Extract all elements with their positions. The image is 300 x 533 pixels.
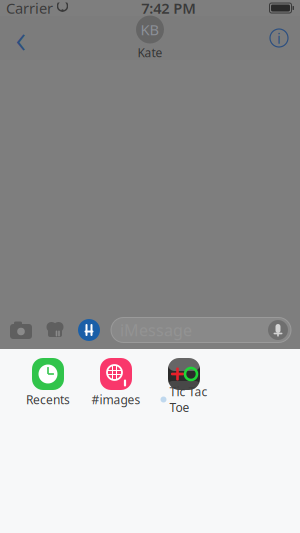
staticText: iMessage [120, 319, 192, 341]
staticText: i [277, 28, 281, 48]
button[interactable]: #images [82, 358, 150, 405]
button[interactable]: Digital Touch [43, 319, 67, 341]
button[interactable]: Back [4, 18, 38, 58]
staticText: ‹ [15, 11, 26, 64]
staticText: Carrier [6, 0, 53, 18]
button[interactable]: Tic Tac Toe [150, 358, 218, 405]
staticText: KB [140, 20, 159, 39]
staticText: Kate [137, 44, 162, 60]
staticText: 7:42 PM [141, 0, 196, 18]
staticText: #images [91, 391, 140, 407]
button[interactable]: Recents [14, 358, 82, 405]
button[interactable]: App Store [77, 318, 101, 342]
button[interactable]: Camera [9, 319, 33, 341]
button[interactable]: iMessage text field [111, 317, 291, 342]
staticText: Recents [26, 391, 70, 407]
staticText: Tic Tac Toe [169, 384, 207, 415]
button[interactable]: Details [262, 18, 296, 58]
button[interactable]: Kate, contact details [136, 15, 164, 60]
